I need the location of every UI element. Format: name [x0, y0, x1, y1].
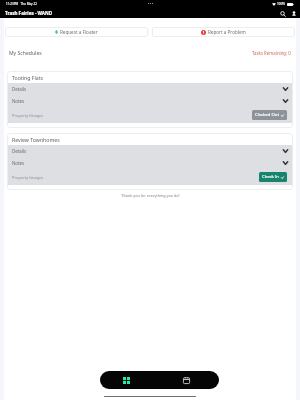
- button[interactable]: Notes: [7, 157, 293, 169]
- button[interactable]: Check In: [259, 172, 287, 182]
- staticText: Notes: [12, 160, 25, 166]
- button[interactable]: Search: [278, 9, 287, 18]
- button[interactable]: Review Townhomes: [7, 133, 293, 190]
- button[interactable]: Dashboard: [117, 371, 135, 389]
- staticText: Property Images: [12, 113, 44, 118]
- button[interactable]: Schedule: [177, 371, 195, 389]
- staticText: Clocked Out: [255, 112, 279, 118]
- staticText: 11:23PM Thu May 22: [6, 2, 37, 6]
- staticText: Check In: [262, 174, 279, 180]
- staticText: 100%: [277, 2, 286, 6]
- staticText: Details: [12, 148, 27, 154]
- button[interactable]: Notes: [7, 95, 293, 107]
- staticText: Tooting Flats: [12, 74, 44, 81]
- staticText: Tasks Remaining: 0: [252, 50, 291, 56]
- button[interactable]: Report a Problem: [152, 27, 295, 37]
- button[interactable]: Clocked Out: [252, 110, 287, 120]
- staticText: Trash Fairies - WAND: [5, 10, 53, 16]
- staticText: Review Townhomes: [12, 136, 60, 143]
- button[interactable]: Details: [7, 83, 293, 95]
- staticText: Request a Floater: [60, 29, 98, 35]
- staticText: Details: [12, 86, 27, 92]
- button[interactable]: Request a Floater: [5, 27, 148, 37]
- staticText: Notes: [12, 98, 25, 104]
- staticText: Property Images: [12, 175, 44, 180]
- staticText: My Schedules: [9, 50, 42, 57]
- button[interactable]: Tooting Flats: [7, 71, 293, 128]
- button[interactable]: Account: [289, 9, 298, 18]
- button[interactable]: Details: [7, 145, 293, 157]
- staticText: Report a Problem: [208, 29, 246, 35]
- staticText: Thank you for everything you do!: [121, 193, 180, 198]
